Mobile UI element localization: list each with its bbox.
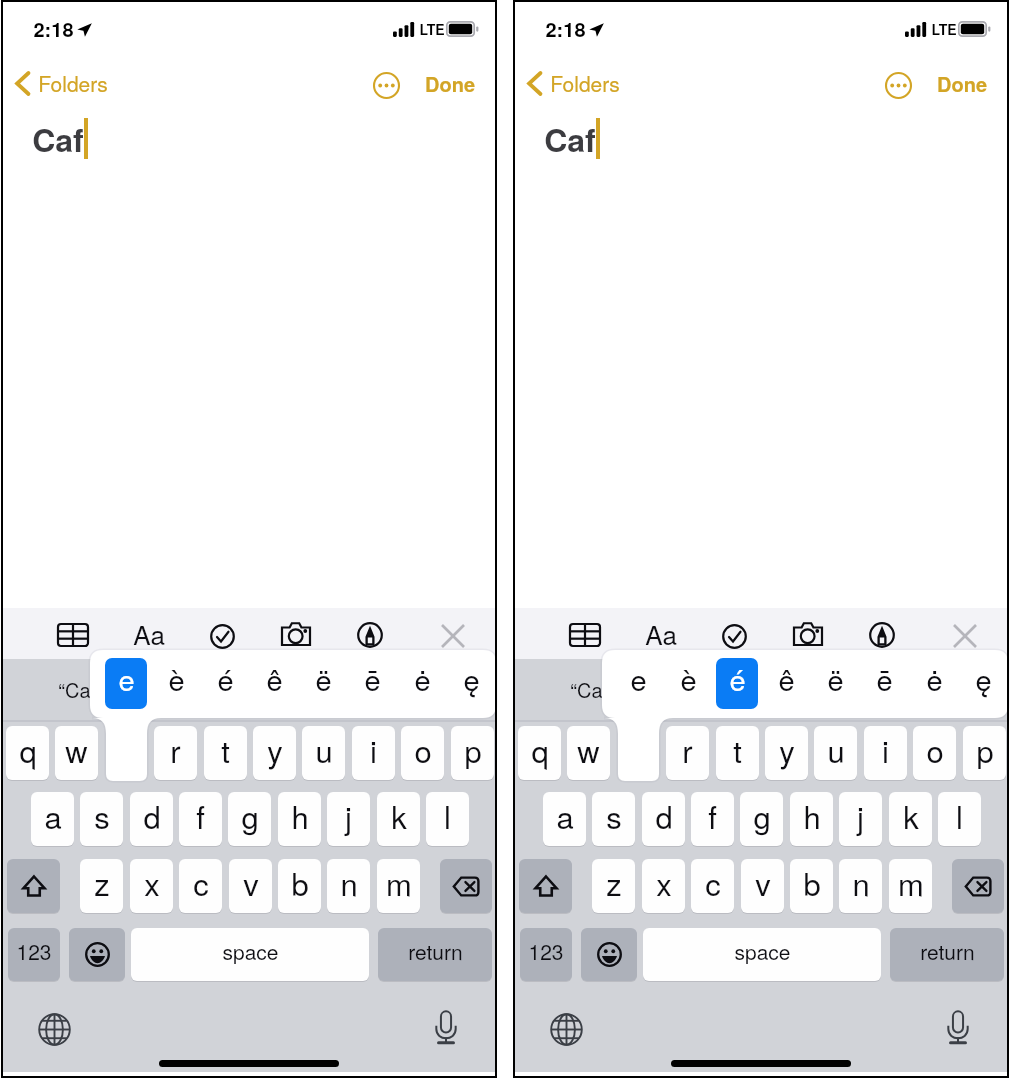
button[interactable]: é — [204, 658, 246, 709]
button[interactable]: b — [790, 859, 833, 913]
button[interactable]: l — [426, 792, 469, 846]
button[interactable]: ę — [962, 658, 1004, 709]
button[interactable]: é — [716, 658, 758, 709]
button[interactable]: c — [179, 859, 222, 913]
button[interactable]: x — [130, 859, 173, 913]
button[interactable]: ë — [814, 658, 856, 709]
button[interactable]: n — [327, 859, 370, 913]
button[interactable]: q — [518, 726, 561, 780]
button[interactable]: Markup — [357, 622, 383, 648]
button[interactable]: h — [278, 792, 321, 846]
button[interactable]: ė — [913, 658, 955, 709]
button[interactable]: k — [377, 792, 420, 846]
button[interactable]: q — [6, 726, 49, 780]
button[interactable]: v — [229, 859, 272, 913]
button[interactable]: b — [278, 859, 321, 913]
button[interactable]: Dictate — [947, 1010, 969, 1044]
button[interactable]: w — [567, 726, 610, 780]
button[interactable]: Aa — [645, 615, 677, 652]
button[interactable]: Aa — [133, 615, 165, 652]
button[interactable]: space — [131, 928, 369, 981]
button[interactable]: p — [451, 726, 494, 780]
button[interactable]: Checklist — [210, 624, 235, 649]
button[interactable]: Camera — [792, 622, 824, 647]
button[interactable]: ê — [765, 658, 807, 709]
button[interactable]: Checklist — [722, 624, 747, 649]
button[interactable]: Done — [935, 69, 989, 98]
button[interactable]: r — [666, 726, 709, 780]
button[interactable]: i — [352, 726, 395, 780]
button[interactable]: ë — [302, 658, 344, 709]
button[interactable]: r — [154, 726, 197, 780]
button[interactable]: Camera — [280, 622, 312, 647]
button[interactable]: s — [592, 792, 635, 846]
button[interactable]: o — [913, 726, 956, 780]
button[interactable]: o — [401, 726, 444, 780]
button[interactable]: d — [642, 792, 685, 846]
button[interactable]: è — [667, 658, 709, 709]
button[interactable]: return — [378, 928, 492, 981]
button[interactable]: ė — [401, 658, 443, 709]
button[interactable]: i — [864, 726, 907, 780]
button[interactable]: g — [228, 792, 271, 846]
button[interactable]: Close — [953, 624, 977, 648]
button[interactable]: Change keyboard — [38, 1013, 71, 1046]
button[interactable] — [952, 859, 1004, 913]
button[interactable]: m — [377, 859, 420, 913]
button[interactable]: h — [790, 792, 833, 846]
button[interactable]: f — [179, 792, 222, 846]
button[interactable]: a — [31, 792, 74, 846]
button[interactable]: return — [890, 928, 1004, 981]
button[interactable]: k — [889, 792, 932, 846]
button[interactable]: y — [253, 726, 296, 780]
button[interactable]: j — [839, 792, 882, 846]
button[interactable]: z — [80, 859, 123, 913]
button[interactable]: x — [642, 859, 685, 913]
button[interactable]: c — [691, 859, 734, 913]
button[interactable]: y — [765, 726, 808, 780]
button[interactable]: Change keyboard — [550, 1013, 583, 1046]
button[interactable]: f — [691, 792, 734, 846]
button[interactable]: l — [938, 792, 981, 846]
button[interactable]: ę — [450, 658, 492, 709]
button[interactable]: u — [814, 726, 857, 780]
button[interactable]: è — [155, 658, 197, 709]
button[interactable]: p — [963, 726, 1006, 780]
button[interactable]: ē — [351, 658, 393, 709]
button[interactable]: ē — [863, 658, 905, 709]
button[interactable]: m — [889, 859, 932, 913]
button[interactable]: Table — [569, 623, 601, 647]
button[interactable]: z — [592, 859, 635, 913]
button[interactable]: More options — [373, 72, 400, 99]
button[interactable]: u — [302, 726, 345, 780]
button[interactable] — [69, 928, 125, 981]
button[interactable]: t — [716, 726, 759, 780]
button[interactable]: Done — [423, 69, 477, 98]
button[interactable]: t — [204, 726, 247, 780]
button[interactable]: Folders — [15, 68, 108, 98]
button[interactable]: space — [643, 928, 881, 981]
button[interactable]: w — [55, 726, 98, 780]
button[interactable]: Folders — [527, 68, 620, 98]
button[interactable]: Close — [441, 624, 465, 648]
button[interactable]: j — [327, 792, 370, 846]
button[interactable]: n — [839, 859, 882, 913]
button[interactable]: d — [130, 792, 173, 846]
button[interactable]: ê — [253, 658, 295, 709]
button[interactable] — [440, 859, 492, 913]
button[interactable]: Markup — [869, 622, 895, 648]
button[interactable]: 123 — [520, 928, 572, 981]
button[interactable]: 123 — [8, 928, 60, 981]
button[interactable]: a — [543, 792, 586, 846]
button[interactable]: v — [741, 859, 784, 913]
button[interactable]: e — [617, 658, 659, 709]
button[interactable] — [7, 859, 60, 913]
button[interactable]: e — [105, 658, 147, 709]
button[interactable] — [581, 928, 637, 981]
button[interactable]: g — [740, 792, 783, 846]
button[interactable] — [519, 859, 572, 913]
button[interactable]: Table — [57, 623, 89, 647]
button[interactable]: Dictate — [435, 1010, 457, 1044]
button[interactable]: s — [80, 792, 123, 846]
button[interactable]: More options — [885, 72, 912, 99]
